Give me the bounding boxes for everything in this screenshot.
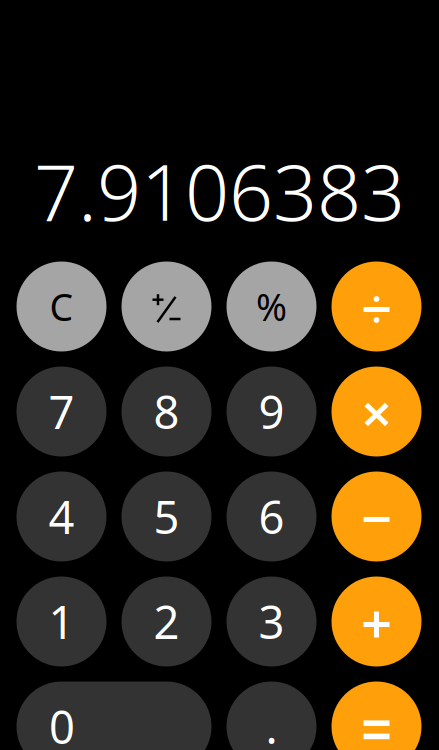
button[interactable]: 8 [121,366,211,456]
staticText: 3 [258,591,284,652]
staticText: 5 [153,486,179,547]
staticText: % [256,282,287,331]
button[interactable]: 1 [16,576,106,666]
button[interactable]: 3 [226,576,316,666]
staticText: . [265,696,277,750]
button[interactable]: Subtract [331,471,421,561]
button[interactable]: C [16,261,106,351]
button[interactable]: Equals [331,681,421,750]
button[interactable]: 4 [16,471,106,561]
button[interactable]: 9 [226,366,316,456]
button[interactable]: 6 [226,471,316,561]
button[interactable]: Multiply [331,366,421,456]
staticText: 8 [153,381,179,442]
staticText: 6 [258,486,284,547]
button[interactable]: Add [331,576,421,666]
button[interactable]: Toggle sign [121,261,211,351]
button[interactable]: 7 [16,366,106,456]
button[interactable]: % [226,261,316,351]
staticText: C [49,282,73,331]
staticText: 9 [258,381,284,442]
staticText: 7 [48,381,74,442]
button[interactable]: Divide [331,261,421,351]
staticText: 1 [48,591,74,652]
staticText: 4 [48,486,74,547]
staticText: 2 [153,591,179,652]
staticText: 0 [49,696,75,750]
button[interactable]: 2 [121,576,211,666]
button[interactable]: 5 [121,471,211,561]
button[interactable]: 0 [16,681,211,750]
button[interactable]: . [226,681,316,750]
staticText: 7.9106383 [34,139,405,242]
